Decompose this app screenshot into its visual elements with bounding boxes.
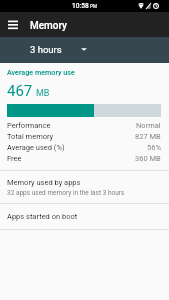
staticText: Average memory use <box>7 68 75 76</box>
staticText: MB <box>36 88 50 99</box>
button[interactable]: 3 hours <box>30 44 87 55</box>
staticText: PM <box>90 4 97 9</box>
button[interactable]: Open navigation drawer <box>1 12 24 35</box>
staticText: Memory <box>30 20 68 32</box>
staticText: 3 hours <box>30 44 62 55</box>
staticText: Memory used by apps <box>7 178 81 187</box>
staticText: Total memory <box>7 132 54 141</box>
staticText: 56% <box>147 143 161 152</box>
staticText: 10:58 <box>72 2 89 10</box>
staticText: 827 MB <box>135 132 161 141</box>
staticText: 32 apps used memory in the last 3 hours <box>7 189 125 197</box>
staticText: Performance <box>7 121 51 130</box>
staticText: Free <box>7 154 22 163</box>
button[interactable]: Apps started on boot <box>0 204 169 229</box>
staticText: Apps started on boot <box>7 212 78 221</box>
button[interactable]: Memory used by apps <box>0 171 169 203</box>
staticText: Average used (%) <box>7 143 65 152</box>
staticText: 467 <box>7 82 33 100</box>
staticText: 360 MB <box>135 154 161 163</box>
staticText: Normal <box>136 121 161 130</box>
